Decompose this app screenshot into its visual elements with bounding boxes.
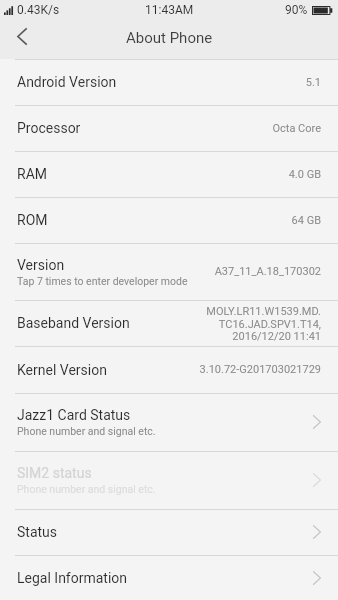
staticText: Version (17, 257, 65, 273)
button[interactable]: Kernel Version (0, 346, 338, 393)
staticText: Baseband Version (17, 315, 130, 331)
staticText: Processor (17, 120, 81, 136)
button[interactable]: Back (0, 20, 43, 59)
staticText: 64 GB (291, 214, 321, 227)
staticText: 5.1 (305, 76, 321, 89)
button[interactable]: Version (0, 243, 338, 300)
staticText: 3.10.72-G201703021729 (199, 363, 321, 376)
staticText: Phone number and signal etc. (17, 483, 156, 495)
staticText: 11:43AM (145, 3, 194, 17)
staticText: 0.43K/s (17, 3, 60, 17)
staticText: Status (17, 524, 58, 540)
button[interactable]: Status (0, 509, 338, 555)
staticText: Kernel Version (17, 362, 107, 378)
staticText: About Phone (126, 29, 213, 47)
staticText: Octa Core (272, 122, 321, 135)
staticText: SIM2 status (17, 465, 92, 481)
button[interactable]: Baseband Version (0, 300, 338, 346)
button[interactable]: RAM (0, 151, 338, 197)
staticText: 90% (285, 3, 308, 17)
staticText: ROM (17, 212, 48, 228)
staticText: Legal Information (17, 570, 128, 586)
button[interactable]: Jazz1 Card Status (0, 393, 338, 451)
staticText: Android Version (17, 74, 117, 90)
staticText: 4.0 GB (288, 168, 321, 181)
staticText: Tap 7 times to enter developer mode (17, 275, 188, 287)
button[interactable]: Legal Information (0, 555, 338, 600)
staticText: MOLY.LR11.W1539.MD. TC16.JAD.SPV1.T14, 2… (206, 305, 321, 342)
staticText: RAM (17, 166, 47, 182)
button[interactable]: ROM (0, 197, 338, 243)
button[interactable]: Processor (0, 105, 338, 151)
staticText: Phone number and signal etc. (17, 425, 156, 437)
staticText: Jazz1 Card Status (17, 407, 131, 423)
button[interactable]: SIM2 status (0, 451, 338, 509)
staticText: A37_11_A.18_170302 (214, 265, 321, 278)
button[interactable]: Android Version (0, 59, 338, 105)
